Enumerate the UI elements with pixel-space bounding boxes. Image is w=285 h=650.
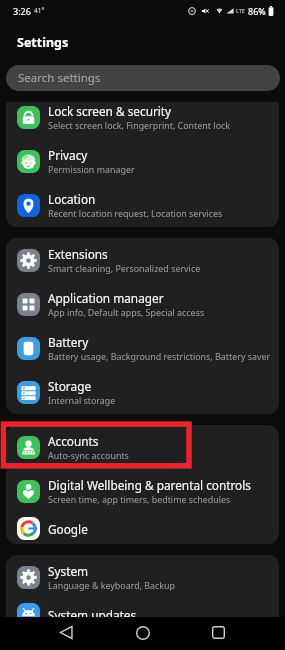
button[interactable]: Google (6, 513, 279, 544)
button[interactable]: Storage (6, 370, 279, 414)
button[interactable]: Recent apps (200, 616, 237, 649)
staticText: 3:26 (13, 5, 31, 17)
staticText: Search settings (18, 70, 101, 86)
staticText: LTE (236, 7, 245, 14)
staticText: Google (48, 521, 88, 537)
staticText: Permission manager (48, 163, 135, 175)
staticText: Screen time, app timers, bedtime schedul… (48, 493, 231, 505)
staticText: App info, Default apps, Special access (48, 306, 205, 318)
button[interactable]: Location (6, 183, 279, 227)
staticText: Language & keyboard, Backup (48, 579, 176, 591)
button[interactable]: Extensions (6, 238, 279, 282)
button[interactable]: Battery (6, 326, 279, 370)
staticText: 41° (34, 6, 45, 15)
button[interactable]: Privacy (6, 139, 279, 183)
staticText: Auto-sync accounts (48, 449, 129, 461)
staticText: Internal storage (48, 394, 116, 406)
button[interactable]: Accounts (6, 425, 279, 469)
staticText: Select screen lock, Fingerprint, Content… (48, 119, 231, 131)
button[interactable]: System updates (6, 599, 279, 630)
button[interactable]: System (6, 555, 279, 599)
button[interactable]: Digital Wellbeing & parental controls (6, 469, 279, 513)
staticText: Lock screen & security (48, 103, 172, 119)
staticText: System (48, 563, 89, 579)
button[interactable]: Back (48, 616, 85, 649)
button[interactable]: Lock screen & security (6, 95, 279, 139)
staticText: Smart cleaning, Personalized service (48, 262, 201, 274)
staticText: System updates (48, 607, 137, 623)
staticText: Location (48, 191, 96, 207)
button[interactable]: Home (124, 616, 161, 649)
button[interactable]: Application manager (6, 282, 279, 326)
staticText: Storage (48, 378, 92, 394)
staticText: Accounts (48, 433, 99, 449)
staticText: 86% (248, 5, 266, 17)
staticText: Battery (48, 334, 89, 350)
staticText: Application manager (48, 290, 164, 306)
button[interactable]: Search settings (6, 65, 280, 91)
staticText: Extensions (48, 246, 108, 262)
staticText: Battery usage, Background restrictions, … (48, 350, 271, 362)
staticText: Settings (17, 34, 69, 51)
staticText: Digital Wellbeing & parental controls (48, 477, 251, 493)
staticText: Recent location request, Location servic… (48, 207, 223, 219)
staticText: Privacy (48, 147, 88, 163)
